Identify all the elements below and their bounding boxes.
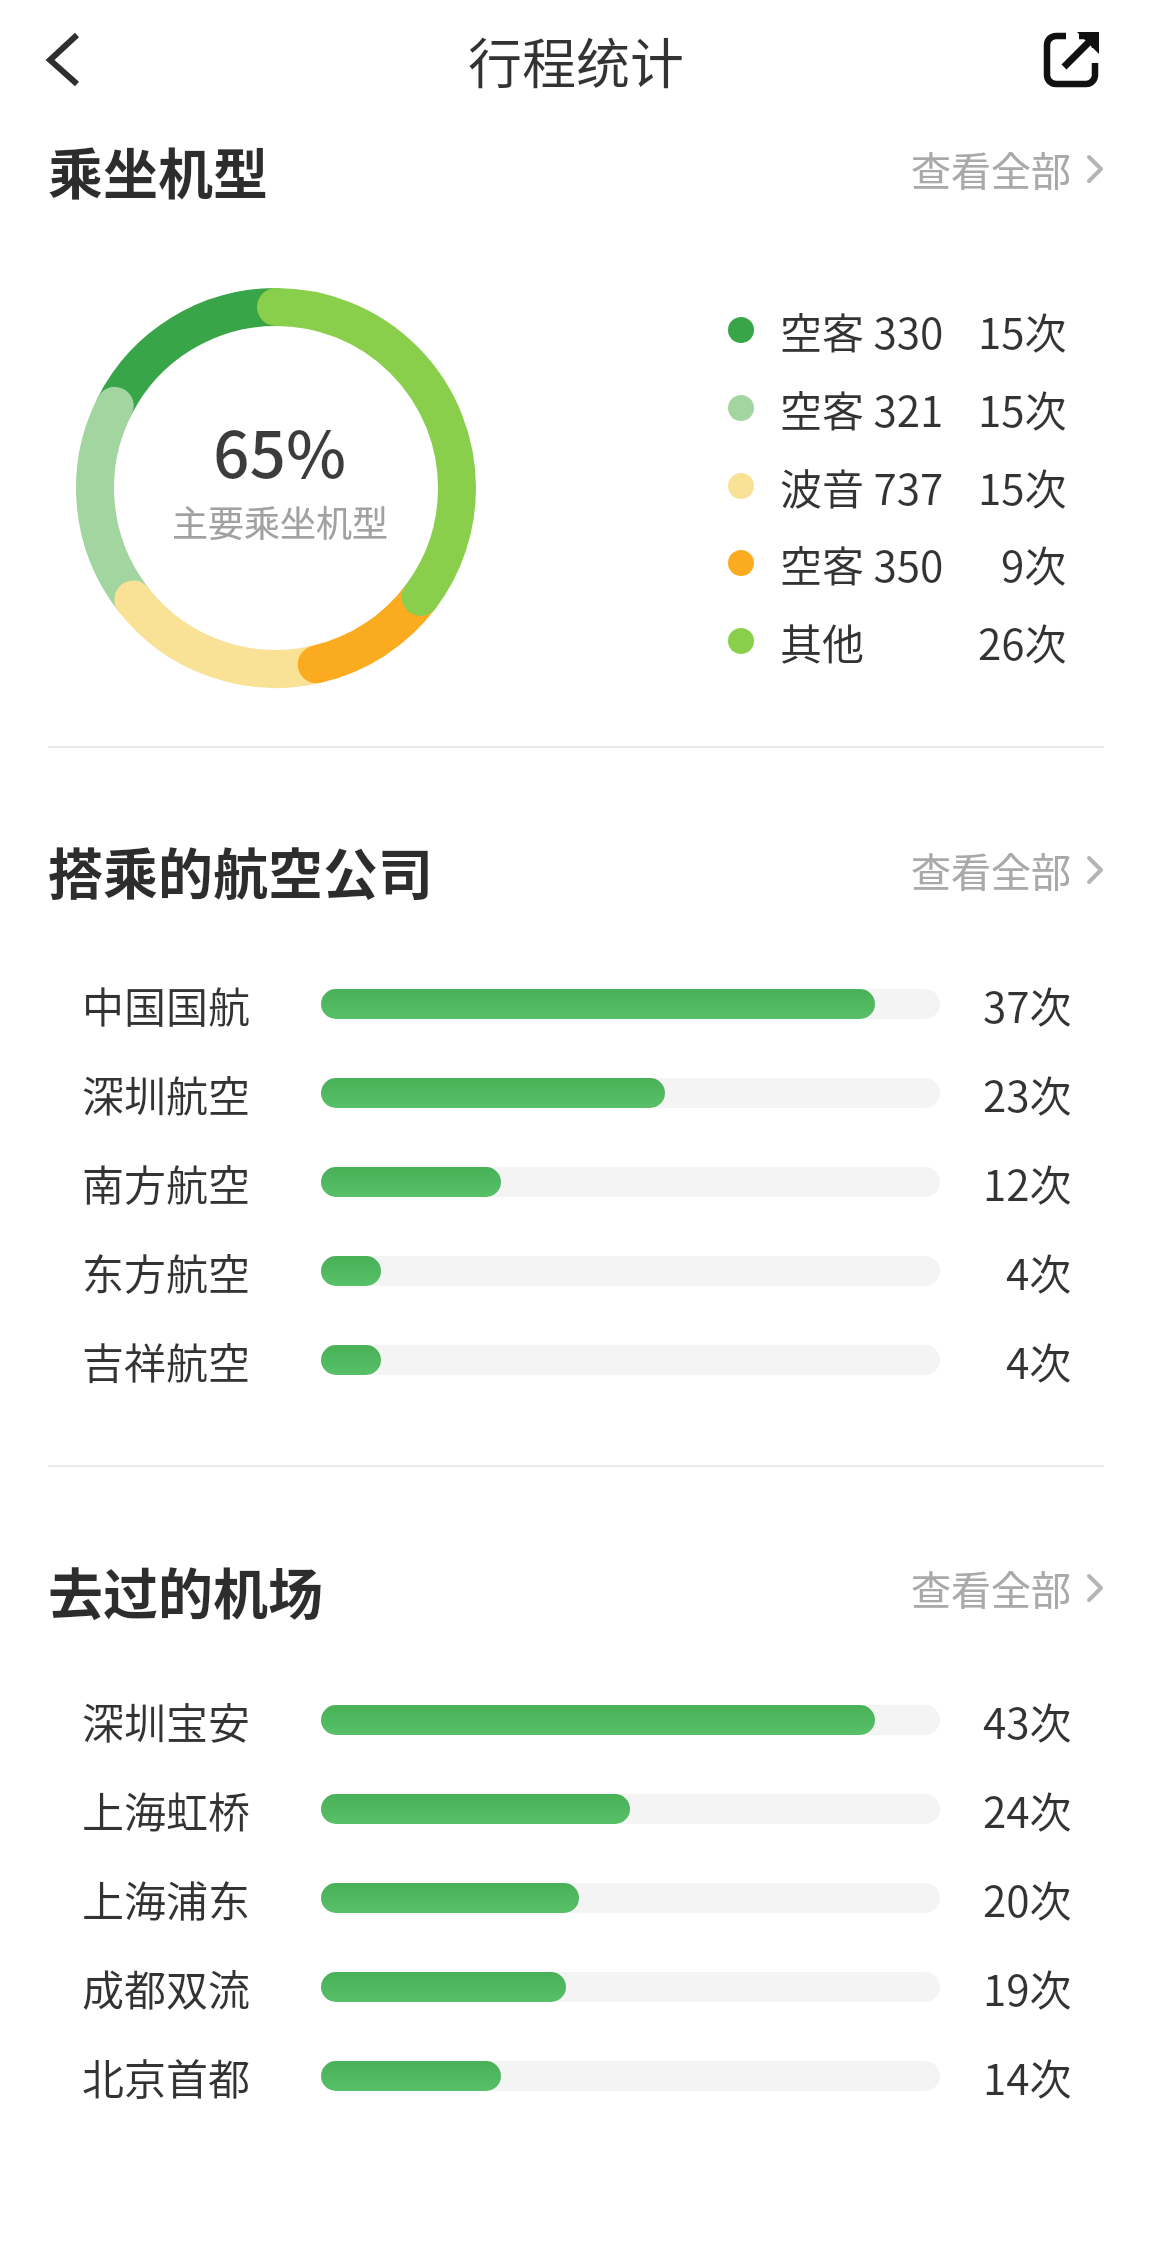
staticText: 搭乘的航空公司 xyxy=(48,830,434,910)
staticText: 43次 xyxy=(983,1690,1072,1751)
staticText: 23次 xyxy=(983,1063,1072,1124)
staticText: 波音 737 xyxy=(780,456,944,517)
staticText: 其他 xyxy=(780,611,865,672)
staticText: 行程统计 xyxy=(468,21,684,99)
staticText: 20次 xyxy=(983,1868,1072,1929)
button[interactable] xyxy=(36,22,92,98)
staticText: 深圳航空 xyxy=(82,1063,251,1124)
staticText: 查看全部 xyxy=(911,841,1071,899)
staticText: 24次 xyxy=(983,1779,1072,1840)
staticText: 15次 xyxy=(978,300,1067,361)
staticText: 查看全部 xyxy=(911,140,1071,198)
staticText: 65% xyxy=(213,404,347,497)
staticText: 上海浦东 xyxy=(82,1868,251,1929)
staticText: 北京首都 xyxy=(82,2046,251,2107)
staticText: 14次 xyxy=(983,2046,1072,2107)
staticText: 中国国航 xyxy=(82,974,251,1035)
staticText: 成都双流 xyxy=(82,1957,251,2018)
staticText: 空客 350 xyxy=(780,533,944,594)
staticText: 查看全部 xyxy=(911,1559,1071,1617)
staticText: 4次 xyxy=(1006,1241,1072,1302)
button[interactable] xyxy=(1040,29,1102,91)
staticText: 南方航空 xyxy=(82,1152,251,1213)
staticText: 深圳宝安 xyxy=(82,1690,251,1751)
staticText: 东方航空 xyxy=(82,1241,251,1302)
staticText: 空客 330 xyxy=(780,300,944,361)
button[interactable]: 查看全部 xyxy=(800,137,1102,201)
staticText: 去过的机场 xyxy=(48,1550,324,1630)
staticText: 19次 xyxy=(983,1957,1072,2018)
staticText: 26次 xyxy=(978,611,1067,672)
staticText: 4次 xyxy=(1006,1330,1072,1391)
staticText: 15次 xyxy=(978,378,1067,439)
staticText: 乘坐机型 xyxy=(48,130,269,210)
staticText: 37次 xyxy=(983,974,1072,1035)
button[interactable]: 查看全部 xyxy=(800,838,1102,902)
staticText: 空客 321 xyxy=(780,378,944,439)
button[interactable]: 查看全部 xyxy=(800,1556,1102,1620)
staticText: 15次 xyxy=(978,456,1067,517)
staticText: 上海虹桥 xyxy=(82,1779,251,1840)
staticText: 主要乘坐机型 xyxy=(172,495,389,547)
staticText: 12次 xyxy=(983,1152,1072,1213)
staticText: 9次 xyxy=(1001,533,1067,594)
staticText: 吉祥航空 xyxy=(82,1330,251,1391)
